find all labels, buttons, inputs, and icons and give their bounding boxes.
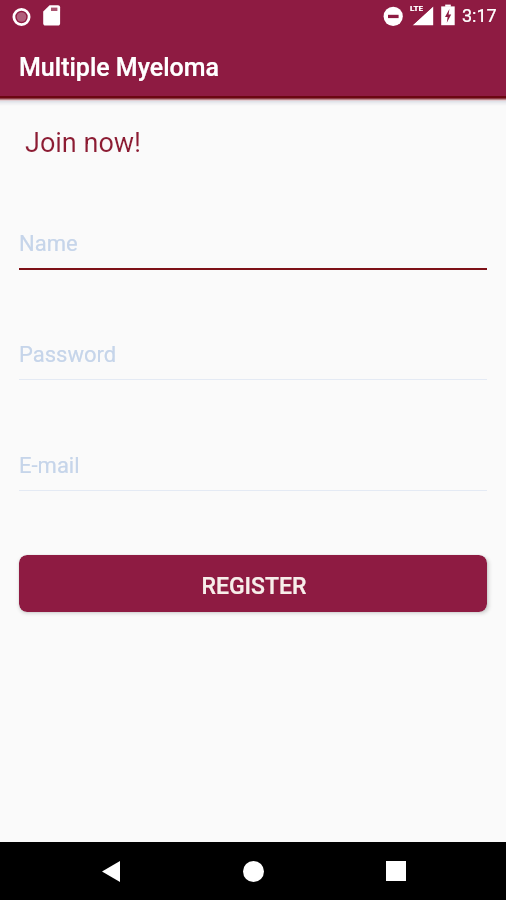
staticText: Join now! [25, 127, 142, 159]
button[interactable]: Recent apps [367, 842, 424, 900]
button[interactable]: Password [19, 342, 487, 398]
button[interactable]: Name [19, 231, 487, 287]
staticText: Password [19, 342, 117, 368]
button[interactable]: Back [82, 842, 139, 900]
staticText: Name [19, 231, 78, 257]
staticText: REGISTER [201, 573, 307, 600]
staticText: E-mail [19, 453, 80, 479]
staticText: 3:17 [462, 5, 497, 26]
button[interactable]: Home [225, 842, 282, 900]
staticText: LTE [410, 4, 423, 13]
button[interactable]: REGISTER [19, 555, 487, 612]
staticText: Multiple Myeloma [19, 53, 220, 82]
button[interactable]: E-mail [19, 453, 487, 509]
